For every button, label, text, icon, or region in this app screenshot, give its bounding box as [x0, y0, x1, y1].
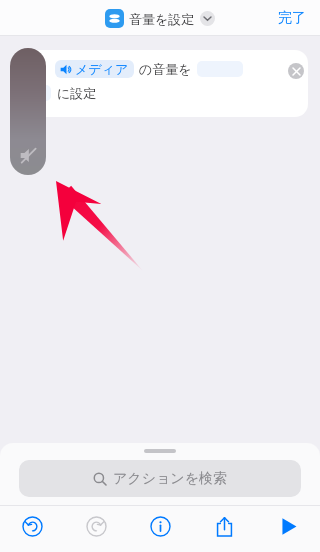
button[interactable]: Info — [128, 506, 192, 547]
button[interactable]: Run shortcut — [256, 506, 320, 547]
button[interactable]: 完了 — [274, 5, 310, 31]
button[interactable]: Shortcut icon — [105, 9, 124, 28]
staticText: アクションを検索 — [113, 470, 227, 488]
staticText: に設定 — [57, 85, 97, 101]
staticText: 完了 — [278, 9, 306, 27]
button[interactable]: More options — [200, 11, 215, 26]
button[interactable]: Undo — [0, 506, 64, 547]
staticText: メディア — [75, 61, 129, 77]
button[interactable]: メディア — [11, 50, 308, 117]
button[interactable]: Share — [192, 506, 256, 547]
button[interactable]: Redo — [64, 506, 128, 547]
staticText: の音量を — [139, 61, 192, 77]
staticText: 音量を設定 — [129, 11, 195, 27]
button[interactable]: アクションを検索 — [19, 460, 301, 497]
button[interactable]: Remove action — [288, 63, 304, 79]
